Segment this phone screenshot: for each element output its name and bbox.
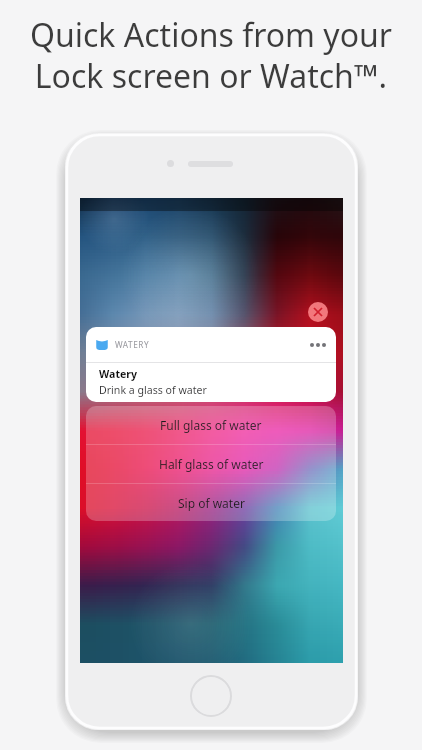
button[interactable]: Full glass of water [86,406,336,444]
staticText: Full glass of water [160,417,262,433]
staticText: Watery [99,367,138,381]
staticText: Sip of water [178,495,245,511]
staticText: Drink a glass of water [99,383,207,397]
button[interactable]: Sip of water [86,484,336,521]
staticText: WATERY [115,339,150,350]
staticText: Half glass of water [159,456,264,472]
button[interactable]: More options [309,337,327,353]
button[interactable]: WATERY [86,327,336,402]
button[interactable]: Dismiss notification [308,302,328,322]
staticText: Quick Actions from your Lock screen or W… [0,13,422,98]
button[interactable]: Half glass of water [86,445,336,483]
